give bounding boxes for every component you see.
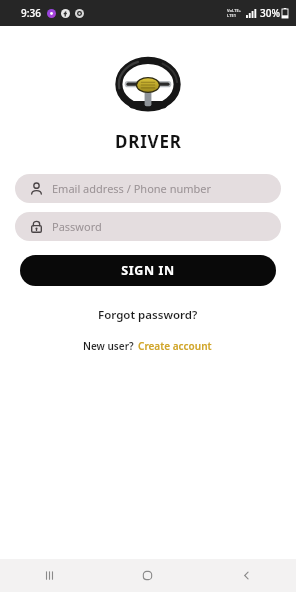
staticText: SIGN IN [121, 262, 175, 279]
other: Driver app logo [117, 58, 179, 112]
button[interactable]: Home [98, 559, 197, 592]
button[interactable]: Email address / Phone number [15, 174, 281, 203]
button[interactable]: Recent apps [0, 559, 98, 592]
staticText: New user? [83, 339, 137, 353]
button[interactable]: Password [15, 212, 281, 241]
staticText: Email address / Phone number [52, 181, 212, 196]
staticText: Create account [138, 339, 212, 353]
staticText: LTE1 [227, 13, 236, 18]
staticText: Password [52, 219, 102, 234]
button[interactable]: Create account [137, 337, 213, 355]
staticText: Forgot password? [98, 307, 198, 323]
button[interactable]: Back [197, 559, 296, 592]
staticText: VoLTE+ [227, 8, 242, 13]
staticText: 30% [260, 6, 280, 20]
staticText: 9:36 [21, 6, 41, 20]
button[interactable]: SIGN IN [20, 255, 276, 286]
button[interactable]: Forgot password? [88, 304, 208, 326]
staticText: DRIVER [115, 130, 182, 153]
